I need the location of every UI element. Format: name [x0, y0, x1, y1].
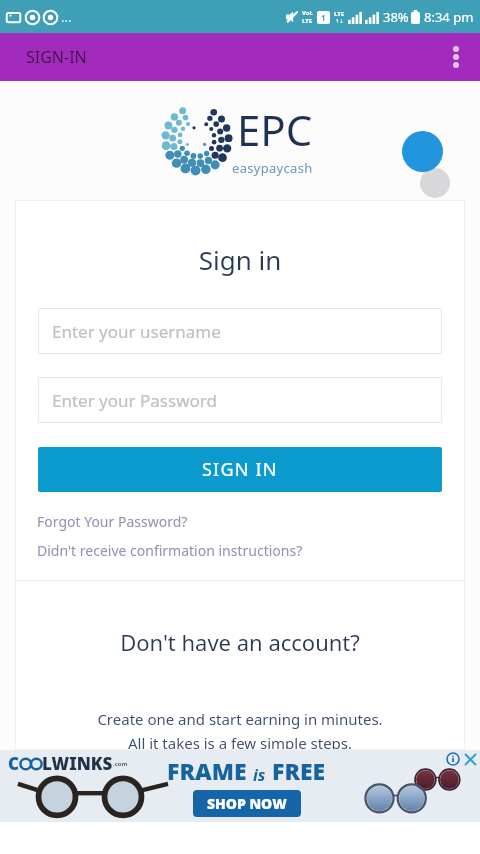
staticText: SHOP NOW	[207, 794, 287, 813]
staticText: Sign in	[15, 242, 465, 277]
button[interactable]: Enter your Password	[38, 377, 442, 423]
staticText: ...	[61, 8, 72, 26]
staticText: Forgot Your Password?	[37, 512, 188, 531]
staticText: C	[8, 752, 20, 775]
staticText: FRAME	[167, 755, 253, 786]
button[interactable]: SHOP NOW	[207, 794, 287, 813]
staticText: SIGN IN	[202, 457, 278, 482]
staticText: ↑↓	[335, 18, 344, 24]
staticText: 38%	[383, 8, 409, 26]
button[interactable]: Didn't receive confirmation instructions…	[37, 541, 303, 560]
button[interactable]: Enter your username	[38, 308, 442, 354]
staticText: 8:34 pm	[424, 8, 474, 26]
button[interactable]: Close ad	[462, 751, 478, 767]
button[interactable]: Forgot Your Password?	[37, 512, 188, 531]
staticText: is	[253, 764, 266, 786]
button[interactable]: SIGN IN	[38, 447, 442, 492]
button[interactable]: Chat bubble	[402, 131, 443, 172]
button[interactable]: C	[0, 750, 480, 822]
staticText: EPC	[237, 101, 313, 158]
staticText: VoŁ	[302, 9, 313, 17]
button[interactable]: More options	[432, 33, 480, 81]
staticText: Enter your Password	[52, 389, 217, 412]
staticText: Don't have an account?	[15, 627, 465, 657]
staticText: Enter your username	[52, 320, 221, 343]
staticText: FREE	[266, 755, 326, 786]
staticText: LTE	[334, 10, 345, 18]
staticText: All it takes is a few simple steps.	[15, 733, 465, 750]
staticText: Create one and start earning in minutes.	[15, 709, 465, 729]
staticText: LTE	[302, 17, 313, 25]
button[interactable]: Ad information	[446, 752, 460, 766]
staticText: .com	[113, 760, 128, 768]
staticText: LWINKS	[42, 752, 113, 775]
staticText: Didn't receive confirmation instructions…	[37, 541, 303, 560]
staticText: easypaycash	[232, 159, 313, 177]
staticText: 1	[321, 12, 326, 23]
staticText: SIGN-IN	[26, 46, 87, 68]
